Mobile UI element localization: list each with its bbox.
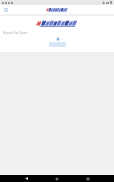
button[interactable]: Open navigation menu <box>2 6 9 13</box>
button[interactable]: Recent apps <box>83 175 93 182</box>
button[interactable]: Home <box>52 175 62 182</box>
staticText: Request Your Quote <box>3 31 28 35</box>
button[interactable]: Upload File <box>49 37 66 47</box>
button[interactable]: Back <box>21 175 31 182</box>
